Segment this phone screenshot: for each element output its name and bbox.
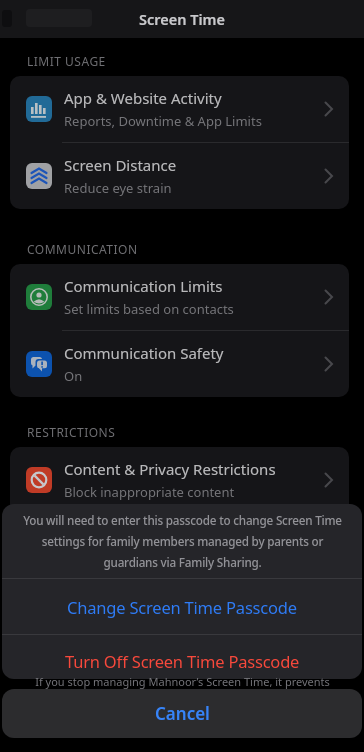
button[interactable]: Communication Safety bbox=[10, 331, 349, 397]
staticText: Reduce eye strain bbox=[64, 179, 172, 197]
staticText: Turn Off Screen Time Passcode bbox=[65, 650, 300, 672]
staticText: Cancel bbox=[155, 702, 210, 725]
staticText: Content & Privacy Restrictions bbox=[64, 459, 276, 479]
button[interactable]: Cancel bbox=[2, 689, 362, 738]
staticText: App & Website Activity bbox=[64, 88, 222, 108]
staticText: Screen Time bbox=[139, 9, 225, 29]
button[interactable]: Screen Distance bbox=[10, 143, 349, 209]
button[interactable] bbox=[10, 514, 349, 580]
button[interactable]: Change Screen Time Passcode bbox=[2, 579, 362, 634]
button[interactable]: Turn Off Screen Time Passcode bbox=[2, 635, 362, 679]
button[interactable]: Content & Privacy Restrictions bbox=[10, 447, 349, 513]
staticText: Set limits based on contacts bbox=[64, 300, 234, 318]
staticText: Communication Safety bbox=[64, 343, 224, 363]
staticText: On bbox=[64, 367, 83, 385]
staticText: Block inappropriate content bbox=[64, 483, 235, 501]
staticText: Change Screen Time Passcode bbox=[67, 596, 297, 618]
staticText: LIMIT USAGE bbox=[27, 53, 106, 69]
staticText: RESTRICTIONS bbox=[27, 424, 116, 440]
button[interactable]: App & Website Activity bbox=[10, 76, 349, 142]
staticText: You will need to enter this passcode to … bbox=[23, 512, 342, 570]
staticText: If you stop managing Mahnoor’s Screen Ti… bbox=[35, 674, 330, 689]
staticText: Communication Limits bbox=[64, 276, 223, 296]
staticText: COMMUNICATION bbox=[27, 241, 138, 257]
staticText: Reports, Downtime & App Limits bbox=[64, 112, 262, 130]
button[interactable]: Communication Limits bbox=[10, 264, 349, 330]
staticText: Screen Distance bbox=[64, 155, 177, 175]
